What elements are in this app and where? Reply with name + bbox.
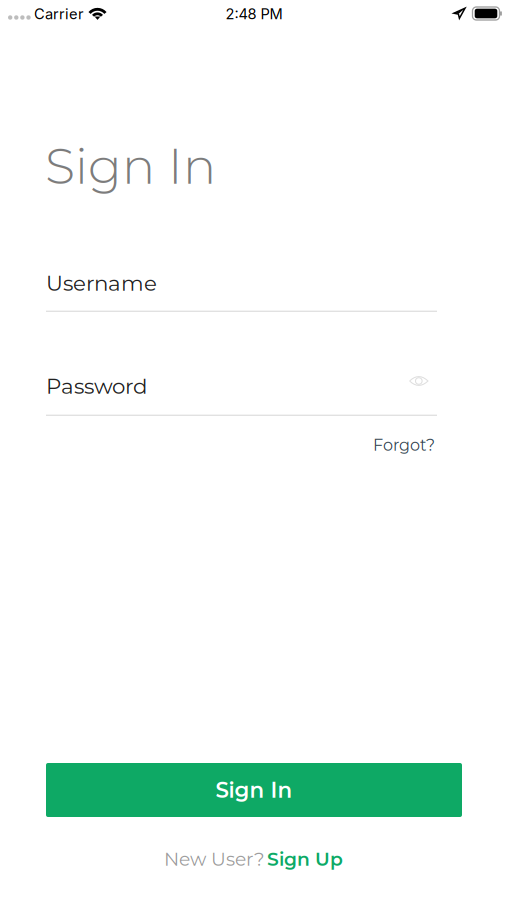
staticText: New User? — [164, 848, 265, 870]
button[interactable]: Sign In — [46, 763, 462, 817]
button[interactable]: Forgot? — [46, 432, 435, 458]
staticText: Sign In — [215, 777, 292, 803]
staticText: Sign Up — [267, 848, 343, 870]
button[interactable]: Sign Up — [267, 848, 343, 870]
staticText: Forgot? — [373, 435, 435, 455]
staticText: Password — [46, 373, 147, 399]
staticText: Sign In — [45, 136, 216, 196]
staticText: 2:48 PM — [225, 5, 282, 23]
button[interactable]: Show password — [404, 367, 434, 395]
staticText: Carrier — [34, 5, 84, 23]
staticText: Username — [46, 270, 157, 296]
